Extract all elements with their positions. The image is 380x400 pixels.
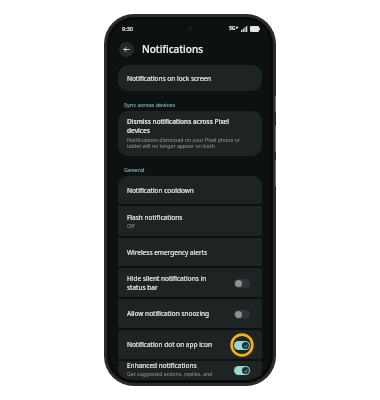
staticText: Flash notifications bbox=[127, 213, 183, 222]
button[interactable]: Dismiss notifications across Pixel devic… bbox=[118, 111, 262, 156]
staticText: Notifications dismissed on your Pixel ph… bbox=[127, 136, 253, 150]
staticText: Notifications on lock screen bbox=[127, 74, 212, 83]
button[interactable]: Notification cooldown bbox=[118, 176, 262, 204]
staticText: Notification cooldown bbox=[127, 186, 194, 195]
staticText: Hide silent notifications in status bar bbox=[127, 274, 226, 292]
staticText: Wireless emergency alerts bbox=[127, 248, 208, 257]
staticText: General bbox=[124, 166, 145, 173]
button[interactable]: Enhanced notifications bbox=[118, 361, 262, 380]
staticText: Sync across devices bbox=[124, 101, 176, 108]
button[interactable]: Wireless emergency alerts bbox=[118, 238, 262, 266]
staticText: Dismiss notifications across Pixel devic… bbox=[127, 117, 253, 135]
staticText: 9:30 bbox=[122, 25, 133, 32]
staticText: Get suggested actions, replies, and more bbox=[127, 370, 226, 380]
staticText: 5G+ bbox=[229, 25, 239, 32]
staticText: Notification dot on app icon bbox=[127, 340, 226, 349]
staticText: Off bbox=[127, 222, 135, 229]
button[interactable]: Notification dot on app icon bbox=[118, 330, 262, 359]
button[interactable]: Back bbox=[119, 42, 134, 57]
button[interactable]: Allow notification snoozing bbox=[118, 299, 262, 328]
staticText: Enhanced notifications bbox=[127, 361, 197, 370]
button[interactable]: Notifications on lock screen bbox=[118, 65, 262, 91]
button[interactable]: Hide silent notifications in status bar bbox=[118, 268, 262, 297]
staticText: Notifications bbox=[142, 42, 204, 56]
staticText: Allow notification snoozing bbox=[127, 309, 226, 318]
button[interactable]: Flash notifications bbox=[118, 206, 262, 236]
